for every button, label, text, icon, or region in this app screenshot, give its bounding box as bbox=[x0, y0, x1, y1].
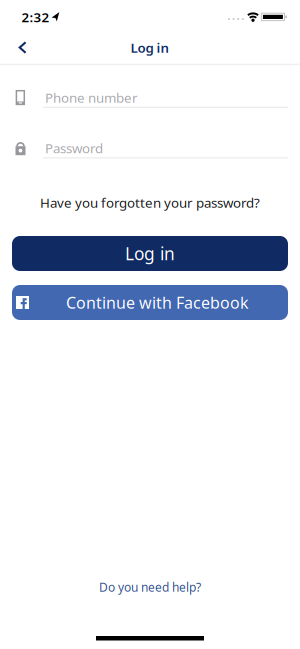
staticText: Continue with Facebook bbox=[66, 292, 249, 313]
button[interactable]: Password bbox=[12, 136, 288, 160]
staticText: Do you need help? bbox=[99, 579, 201, 595]
staticText: Log in bbox=[125, 242, 175, 265]
button[interactable] bbox=[7, 32, 37, 62]
button[interactable]: Log in bbox=[12, 236, 288, 271]
staticText: Have you forgotten your password? bbox=[40, 194, 260, 211]
button[interactable]: Phone number bbox=[12, 85, 288, 109]
staticText: Password bbox=[45, 139, 103, 157]
staticText: Log in bbox=[130, 39, 169, 56]
button[interactable]: Continue with Facebook bbox=[12, 285, 288, 320]
button[interactable]: Have you forgotten your password? bbox=[40, 194, 260, 211]
staticText: Phone number bbox=[45, 89, 138, 106]
staticText: 2:32 bbox=[21, 8, 49, 26]
button[interactable]: Do you need help? bbox=[99, 579, 201, 595]
